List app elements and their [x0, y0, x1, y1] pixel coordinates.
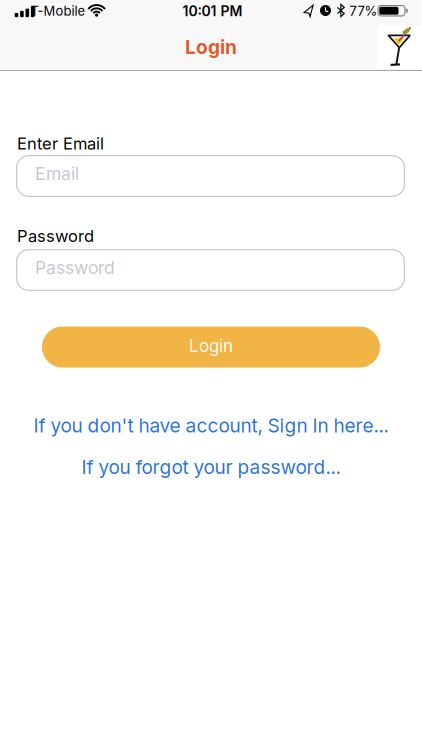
staticText: Login: [185, 35, 237, 58]
staticText: T-Mobile: [30, 3, 85, 19]
staticText: Email: [35, 163, 79, 184]
textField[interactable]: Email: [16, 165, 405, 187]
staticText: Password: [17, 226, 94, 246]
staticText: Password: [35, 257, 115, 278]
button[interactable]: If you don't have account, Sign In here.…: [33, 414, 388, 437]
staticText: If you forgot your password...: [81, 455, 340, 478]
staticText: 10:01 PM: [182, 3, 242, 20]
staticText: 77%: [349, 3, 377, 19]
button[interactable]: Login: [42, 326, 380, 367]
staticText: Enter Email: [17, 133, 104, 153]
button[interactable]: If you forgot your password...: [81, 455, 340, 478]
staticText: Login: [189, 335, 233, 356]
secureTextField[interactable]: Password: [16, 259, 405, 281]
staticText: If you don't have account, Sign In here.…: [33, 414, 388, 437]
